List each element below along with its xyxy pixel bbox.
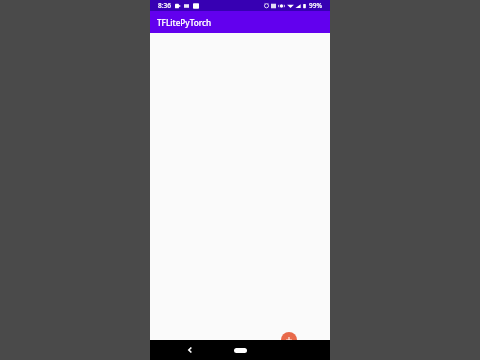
- button[interactable]: Add: [281, 332, 297, 348]
- staticText: TFLitePyTorch: [157, 17, 212, 28]
- button[interactable]: Back: [180, 340, 200, 360]
- staticText: 8:36: [158, 1, 171, 10]
- staticText: 99%: [309, 1, 322, 10]
- button[interactable]: Home: [225, 342, 255, 358]
